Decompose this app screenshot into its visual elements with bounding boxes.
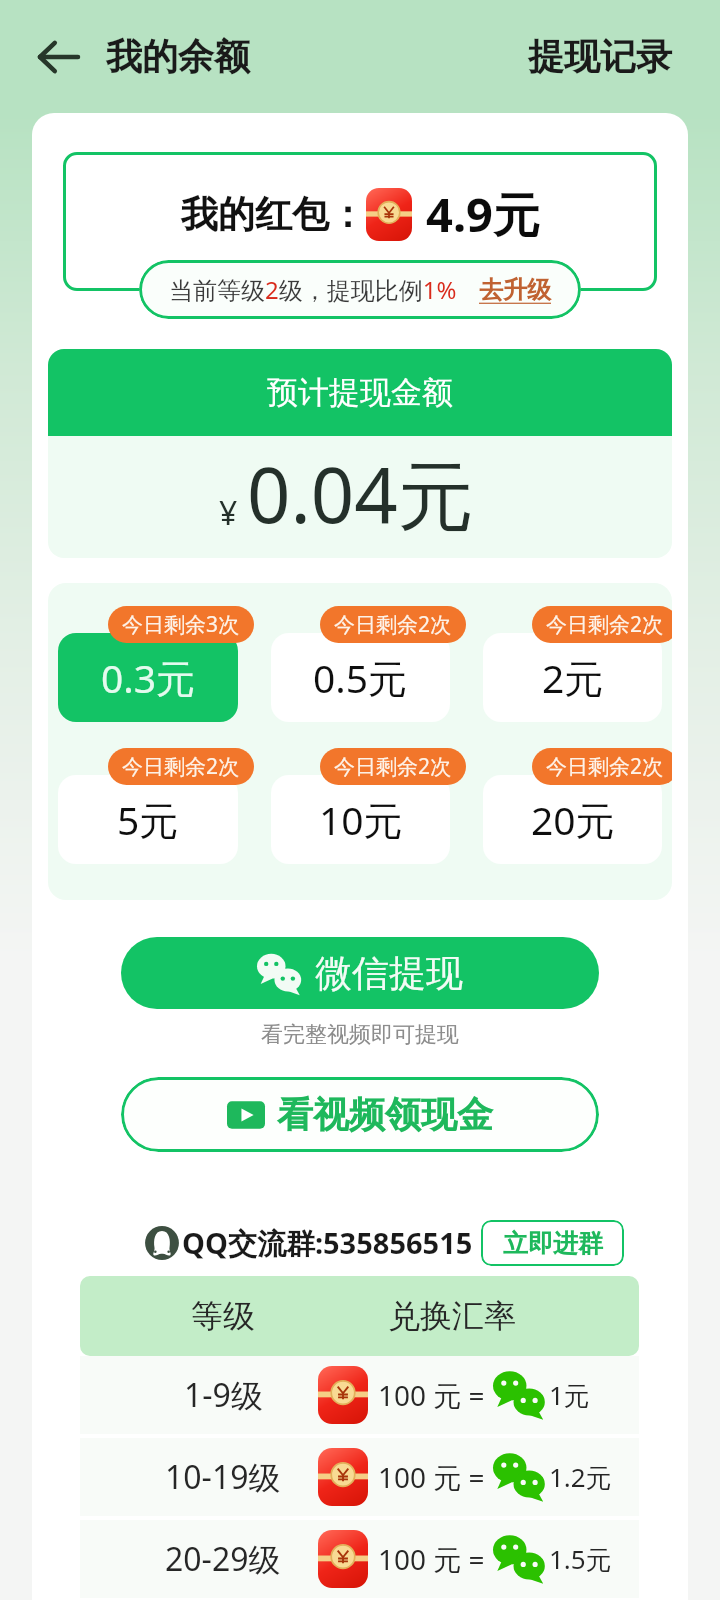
- staticText: 100 元 =: [378, 1376, 485, 1414]
- staticText: 100 元 =: [378, 1458, 485, 1496]
- staticText: 今日剩余2次: [334, 610, 452, 639]
- button[interactable]: 当前等级2级，提现比例1%: [139, 260, 581, 319]
- button[interactable]: Back: [30, 28, 88, 86]
- staticText: 100 元 =: [378, 1540, 485, 1578]
- staticText: 立即进群: [503, 1228, 603, 1259]
- staticText: ¥: [219, 491, 238, 535]
- staticText: 等级: [191, 1296, 255, 1336]
- button[interactable]: 提现记录: [528, 34, 672, 79]
- staticText: 5元: [117, 793, 179, 846]
- button[interactable]: 20-29级: [80, 1520, 639, 1598]
- staticText: 兑换汇率: [388, 1296, 516, 1336]
- staticText: 我的红包：: [181, 191, 366, 238]
- staticText: 1.5元: [549, 1541, 612, 1577]
- staticText: 0.04元: [247, 442, 474, 546]
- button[interactable]: 0.5元: [271, 633, 450, 722]
- staticText: 0.3元: [101, 651, 196, 704]
- button[interactable]: 看视频领现金: [121, 1077, 599, 1152]
- button[interactable]: 0.3元: [58, 633, 238, 722]
- staticText: 10-19级: [165, 1455, 281, 1499]
- staticText: 看视频领现金: [277, 1092, 493, 1137]
- staticText: 预计提现金额: [267, 373, 453, 412]
- button[interactable]: 10-19级: [80, 1438, 639, 1516]
- staticText: 2元: [542, 651, 604, 704]
- staticText: 今日剩余2次: [546, 610, 664, 639]
- staticText: 今日剩余3次: [122, 610, 240, 639]
- button[interactable]: 20元: [483, 775, 662, 864]
- staticText: 1元: [549, 1377, 590, 1413]
- staticText: 4.9元: [426, 182, 540, 246]
- staticText: 20-29级: [165, 1537, 281, 1581]
- staticText: 1-9级: [184, 1373, 263, 1417]
- staticText: 0.5元: [313, 651, 408, 704]
- button[interactable]: 微信提现: [121, 937, 599, 1009]
- staticText: 今日剩余2次: [334, 752, 452, 781]
- staticText: 10元: [319, 793, 403, 846]
- staticText: 今日剩余2次: [546, 752, 664, 781]
- button[interactable]: 1-9级: [80, 1356, 639, 1434]
- staticText: 今日剩余2次: [122, 752, 240, 781]
- staticText: 20元: [531, 793, 615, 846]
- button[interactable]: 10元: [271, 775, 450, 864]
- button[interactable]: 5元: [58, 775, 238, 864]
- staticText: 提现记录: [528, 34, 672, 79]
- staticText: 看完整视频即可提现: [32, 1021, 688, 1049]
- button[interactable]: 立即进群: [481, 1220, 624, 1266]
- staticText: 1.2元: [549, 1459, 612, 1495]
- staticText: 去升级: [479, 275, 551, 305]
- staticText: 微信提现: [315, 950, 463, 997]
- staticText: 我的余额: [106, 34, 250, 79]
- staticText: 当前等级2级，提现比例1%: [169, 273, 457, 306]
- staticText: QQ交流群:535856515: [182, 1223, 473, 1263]
- staticText: 等级: [366, 1296, 430, 1336]
- button[interactable]: 2元: [483, 633, 662, 722]
